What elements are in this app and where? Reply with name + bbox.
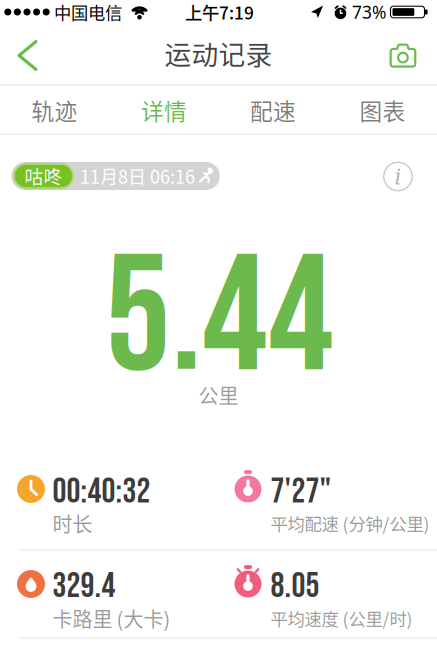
staticText: i — [394, 165, 401, 189]
staticText: 运动记录 — [164, 34, 272, 72]
staticText: 11月8日 06:16 — [80, 163, 195, 189]
button[interactable]: 轨迹 — [0, 86, 109, 134]
staticText: 上午7:19 — [185, 0, 254, 25]
staticText: 咕咚 — [24, 162, 62, 189]
staticText: 详情 — [141, 94, 187, 126]
button[interactable]: 配速 — [219, 86, 328, 134]
staticText: 329.4 — [52, 566, 115, 607]
staticText: 00:40:32 — [52, 471, 150, 513]
staticText: 中国电信 — [54, 0, 122, 25]
button[interactable]: 图表 — [328, 86, 437, 134]
staticText: 73% — [352, 0, 386, 23]
staticText: 8.05 — [270, 566, 319, 607]
staticText: 卡路里 (大卡) — [52, 604, 170, 633]
button[interactable]: 咕咚 — [11, 162, 220, 190]
staticText: 平均配速 (分钟/公里) — [270, 511, 429, 536]
staticText: 时长 — [52, 509, 92, 538]
staticText: 5.44 — [105, 221, 334, 418]
button[interactable]: 详情 — [109, 86, 218, 134]
staticText: 公里 — [198, 380, 238, 409]
staticText: 图表 — [359, 94, 405, 126]
staticText: 7'27" — [270, 471, 331, 513]
staticText: 配速 — [250, 94, 296, 126]
button[interactable]: Info — [378, 156, 418, 196]
button[interactable]: Back — [5, 29, 49, 81]
staticText: 平均速度 (公里/时) — [270, 606, 412, 631]
button[interactable]: Camera — [381, 33, 425, 77]
staticText: 轨迹 — [32, 94, 78, 126]
